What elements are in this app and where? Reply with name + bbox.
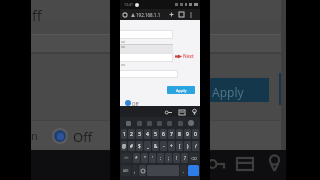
staticText: 5 bbox=[154, 131, 157, 138]
button[interactable]: Addresses bbox=[192, 109, 197, 115]
staticText: Next bbox=[183, 53, 194, 59]
staticText: n bbox=[31, 128, 38, 143]
staticText: 192.168.1.1 bbox=[136, 12, 161, 18]
button[interactable]: . bbox=[180, 165, 187, 176]
staticText: ⌫ bbox=[191, 156, 197, 161]
staticText: 6 bbox=[162, 131, 165, 138]
staticText: - bbox=[163, 143, 165, 149]
staticText: * bbox=[135, 155, 138, 161]
staticText: # bbox=[130, 143, 133, 149]
staticText: Off bbox=[73, 128, 93, 146]
staticText: , bbox=[134, 168, 136, 174]
button[interactable]: Passwords bbox=[208, 157, 226, 171]
button[interactable]: =\< bbox=[121, 153, 132, 163]
staticText: Apply bbox=[212, 84, 244, 100]
button[interactable]: * bbox=[133, 153, 140, 163]
staticText: ' bbox=[152, 155, 154, 161]
staticText: ABC bbox=[123, 169, 129, 173]
button[interactable]: More options bbox=[189, 12, 193, 18]
button[interactable]: ; bbox=[165, 153, 172, 163]
button[interactable]: Keyboard tool bbox=[137, 121, 142, 126]
staticText: 9 bbox=[186, 131, 189, 138]
button[interactable]: Apply bbox=[210, 78, 269, 102]
button[interactable]: Home bbox=[122, 12, 128, 18]
staticText: Apply bbox=[176, 88, 187, 93]
button[interactable]: & bbox=[152, 141, 159, 151]
button[interactable]: 3 bbox=[136, 129, 143, 139]
button[interactable]: 8 bbox=[176, 129, 183, 139]
button[interactable]: Keyboard tool bbox=[178, 121, 183, 126]
staticText: 1 bbox=[123, 131, 126, 138]
staticText: " bbox=[144, 155, 146, 161]
button[interactable]: ' bbox=[149, 153, 156, 163]
staticText: 3 bbox=[138, 131, 141, 138]
button[interactable]: Keyboard tool bbox=[126, 121, 131, 126]
button[interactable]: 0 bbox=[192, 129, 199, 139]
staticText: / bbox=[195, 143, 197, 149]
staticText: @ bbox=[122, 143, 127, 149]
staticText: ( bbox=[179, 143, 181, 149]
button[interactable]: ? bbox=[181, 153, 188, 163]
staticText: . bbox=[183, 168, 185, 174]
button[interactable]: ! bbox=[173, 153, 180, 163]
staticText: ? bbox=[184, 155, 186, 161]
staticText: _ bbox=[147, 143, 149, 149]
button[interactable]: ABC bbox=[121, 165, 131, 176]
button[interactable]: ) bbox=[184, 141, 191, 151]
button[interactable]: $ bbox=[136, 141, 143, 151]
staticText: + bbox=[170, 143, 173, 149]
button[interactable] bbox=[125, 100, 131, 106]
button[interactable]: 1 bbox=[121, 129, 127, 139]
button[interactable] bbox=[52, 128, 68, 144]
staticText: Off bbox=[132, 101, 139, 107]
staticText: 4 bbox=[146, 131, 149, 138]
staticText: : bbox=[160, 155, 162, 161]
button[interactable]: 7 bbox=[168, 129, 175, 139]
staticText: ) bbox=[187, 143, 189, 149]
button[interactable]: Keyboard tool bbox=[157, 121, 162, 126]
button[interactable]: Backspace bbox=[189, 153, 199, 163]
button[interactable]: ( bbox=[176, 141, 183, 151]
button[interactable]: Account bbox=[188, 120, 194, 126]
staticText: 7 bbox=[170, 131, 173, 138]
button[interactable]: 6 bbox=[160, 129, 167, 139]
button[interactable]: / bbox=[192, 141, 199, 151]
button[interactable]: Keyboard tool bbox=[147, 121, 152, 126]
staticText: ff bbox=[32, 6, 42, 25]
button[interactable]: " bbox=[141, 153, 148, 163]
button[interactable]: Keyboard tool bbox=[167, 121, 172, 126]
staticText: 13:41 bbox=[124, 2, 133, 7]
staticText: ; bbox=[168, 155, 170, 161]
staticText: & bbox=[154, 143, 158, 149]
staticText: ! bbox=[176, 155, 178, 161]
button[interactable]: Apply bbox=[167, 86, 195, 94]
button[interactable]: Passwords bbox=[165, 110, 172, 115]
button[interactable]: Payment methods bbox=[236, 157, 254, 171]
button[interactable]: Emoji bbox=[139, 165, 146, 176]
button[interactable]: 9 bbox=[184, 129, 191, 139]
button[interactable]: + bbox=[168, 141, 175, 151]
button[interactable]: Payments bbox=[179, 110, 185, 115]
button[interactable]: , bbox=[132, 165, 138, 176]
button[interactable]: 5 bbox=[152, 129, 159, 139]
button[interactable]: @ bbox=[121, 141, 127, 151]
button[interactable]: 4 bbox=[144, 129, 151, 139]
button[interactable]: - bbox=[160, 141, 167, 151]
staticText: $ bbox=[138, 143, 141, 149]
button[interactable]: New tab bbox=[169, 12, 174, 17]
button[interactable]: _ bbox=[144, 141, 151, 151]
staticText: 2 bbox=[130, 131, 133, 138]
staticText: 0 bbox=[194, 131, 197, 138]
button[interactable]: 2 bbox=[128, 129, 135, 139]
staticText: 8 bbox=[178, 131, 181, 138]
button[interactable]: Addresses bbox=[268, 154, 281, 172]
button[interactable]: : bbox=[157, 153, 164, 163]
button[interactable]: Enter bbox=[188, 165, 199, 176]
button[interactable]: # bbox=[128, 141, 135, 151]
staticText: =\< bbox=[124, 156, 129, 160]
button[interactable]: Tabs bbox=[179, 12, 184, 17]
